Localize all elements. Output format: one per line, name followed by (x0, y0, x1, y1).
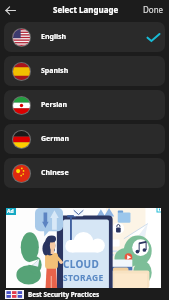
staticText: Done (143, 4, 164, 15)
button[interactable]: Ad info (156, 208, 161, 213)
staticText: STORAGE (63, 272, 104, 284)
button[interactable]: Best Security Practices (0, 288, 169, 300)
button[interactable]: German (4, 124, 165, 154)
button[interactable]: Persian (4, 90, 165, 120)
staticText: Persian (41, 100, 68, 110)
button[interactable]: English (4, 22, 165, 52)
staticText: Ad (7, 208, 14, 215)
staticText: CLOUD (63, 257, 100, 271)
staticText: English (41, 32, 67, 42)
staticText: Select Language (53, 4, 119, 15)
button[interactable]: Chinese (4, 158, 165, 188)
staticText: German (41, 134, 69, 144)
button[interactable]: Spanish (4, 56, 165, 86)
staticText: Spanish (41, 66, 69, 76)
staticText: Best Security Practices (28, 290, 100, 299)
button[interactable]: CLOUD (6, 208, 161, 288)
button[interactable]: Done (138, 1, 169, 18)
button[interactable]: Back (2, 2, 18, 18)
staticText: Chinese (41, 168, 69, 178)
